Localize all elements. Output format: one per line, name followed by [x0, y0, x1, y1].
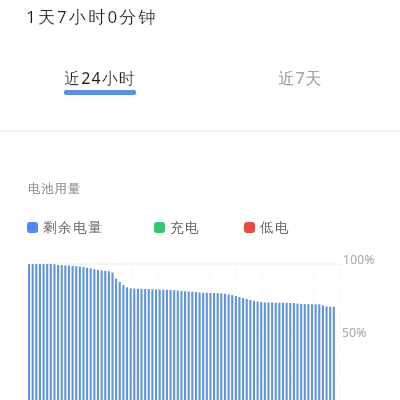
staticText: 低电	[260, 219, 291, 236]
staticText: 充电	[170, 219, 201, 236]
button[interactable]: 近7天	[200, 50, 400, 130]
staticText: 100%	[343, 251, 375, 267]
staticText: 近7天	[278, 67, 323, 89]
staticText: 电池用量	[28, 181, 82, 197]
button[interactable]: 剩余电量	[27, 219, 104, 236]
other: Battery level chart for the last 24 hour…	[0, 0, 400, 400]
staticText: 剩余电量	[43, 219, 104, 236]
staticText: 50%	[342, 324, 367, 340]
staticText: 近24小时	[64, 67, 136, 89]
staticText: 1天7小时0分钟	[26, 5, 158, 28]
button[interactable]: 低电	[244, 219, 291, 236]
button[interactable]: 充电	[154, 219, 201, 236]
button[interactable]: 近24小时	[0, 50, 200, 130]
